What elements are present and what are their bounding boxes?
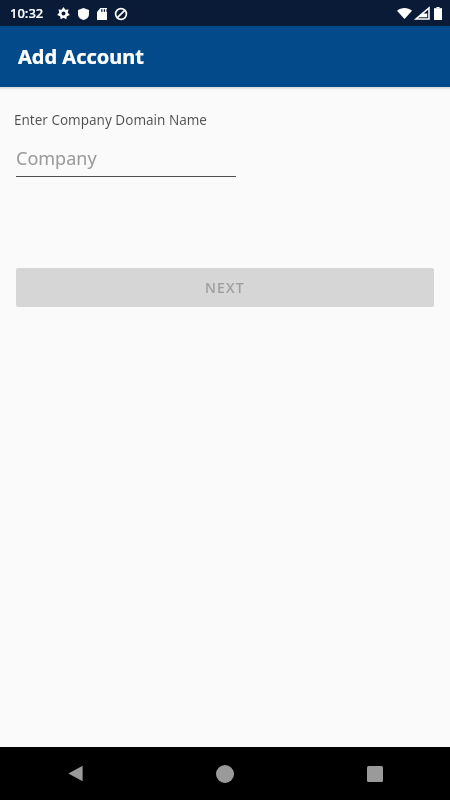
button[interactable]: Company bbox=[16, 146, 236, 177]
button[interactable]: Back bbox=[0, 747, 150, 800]
button[interactable]: NEXT bbox=[16, 268, 434, 307]
staticText: Company bbox=[16, 146, 97, 171]
staticText: NEXT bbox=[205, 278, 245, 297]
button[interactable]: Recent apps bbox=[300, 747, 450, 800]
staticText: Add Account bbox=[18, 43, 144, 70]
staticText: Enter Company Domain Name bbox=[14, 111, 207, 129]
staticText: 10:32 bbox=[10, 4, 44, 22]
button[interactable]: Home bbox=[150, 747, 300, 800]
